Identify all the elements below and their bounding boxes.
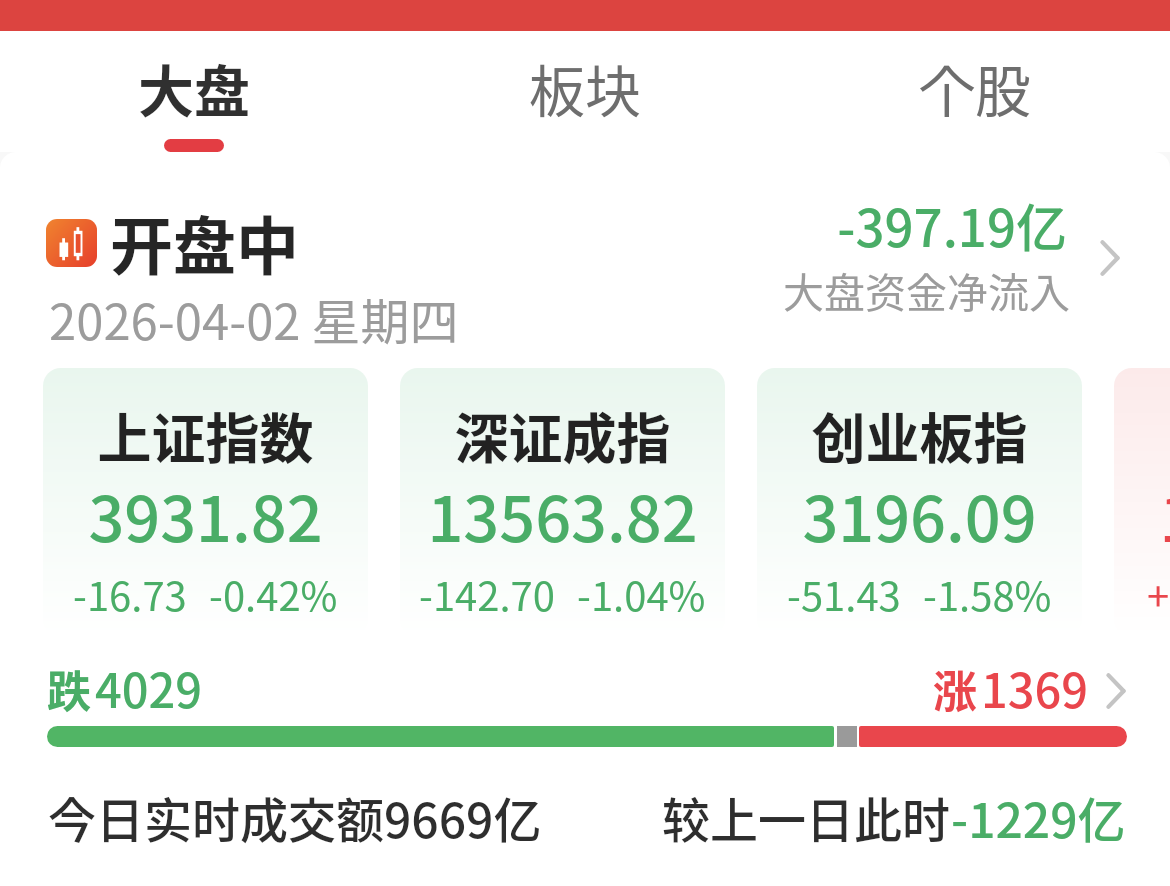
staticText: 个股 bbox=[885, 47, 1065, 128]
other: View more bbox=[1100, 240, 1120, 276]
other: View more bbox=[1106, 673, 1126, 709]
button[interactable]: 北证50 bbox=[1114, 368, 1170, 636]
staticText: -0.42% bbox=[209, 565, 338, 623]
staticText: 今日实时成交额9669亿 bbox=[48, 782, 542, 852]
staticText: -1.58% bbox=[923, 565, 1052, 623]
button[interactable]: 上证指数 bbox=[43, 368, 368, 636]
staticText: 1369 bbox=[981, 653, 1089, 721]
button[interactable]: 板块 bbox=[495, 36, 675, 156]
staticText: 开盘中 bbox=[110, 196, 299, 287]
staticText: -1229亿 bbox=[951, 782, 1126, 852]
staticText: 跌 bbox=[47, 657, 91, 721]
staticText: 3931.82 bbox=[43, 469, 368, 560]
staticText: -142.70 bbox=[419, 565, 555, 623]
staticText: 大盘 bbox=[104, 47, 284, 128]
button[interactable]: 大盘 bbox=[104, 36, 284, 156]
staticText: 深证成指 bbox=[400, 396, 725, 474]
button[interactable]: 创业板指 bbox=[757, 368, 1082, 636]
staticText: 较上一日此时 bbox=[662, 782, 951, 852]
staticText: 大盘资金净流入 bbox=[690, 260, 1070, 319]
button[interactable]: 深证成指 bbox=[400, 368, 725, 636]
staticText: 1420.12 bbox=[1114, 469, 1170, 560]
staticText: 13563.82 bbox=[400, 469, 725, 560]
staticText: -397.19亿 bbox=[690, 188, 1067, 262]
staticText: 板块 bbox=[495, 47, 675, 128]
staticText: -16.73 bbox=[73, 565, 187, 623]
staticText: 2026-04-02 星期四 bbox=[49, 283, 459, 354]
staticText: 创业板指 bbox=[757, 396, 1082, 474]
staticText: 3196.09 bbox=[757, 469, 1082, 560]
staticText: 涨 bbox=[933, 657, 977, 721]
staticText: 4029 bbox=[95, 653, 203, 721]
button[interactable]: -397.19亿 bbox=[690, 186, 1126, 318]
staticText: -1.04% bbox=[577, 565, 706, 623]
staticText: +13.1 bbox=[1147, 565, 1170, 623]
button[interactable]: 个股 bbox=[885, 36, 1065, 156]
button[interactable]: 跌 bbox=[40, 648, 1130, 756]
staticText: -51.43 bbox=[787, 565, 901, 623]
staticText: 上证指数 bbox=[43, 396, 368, 474]
